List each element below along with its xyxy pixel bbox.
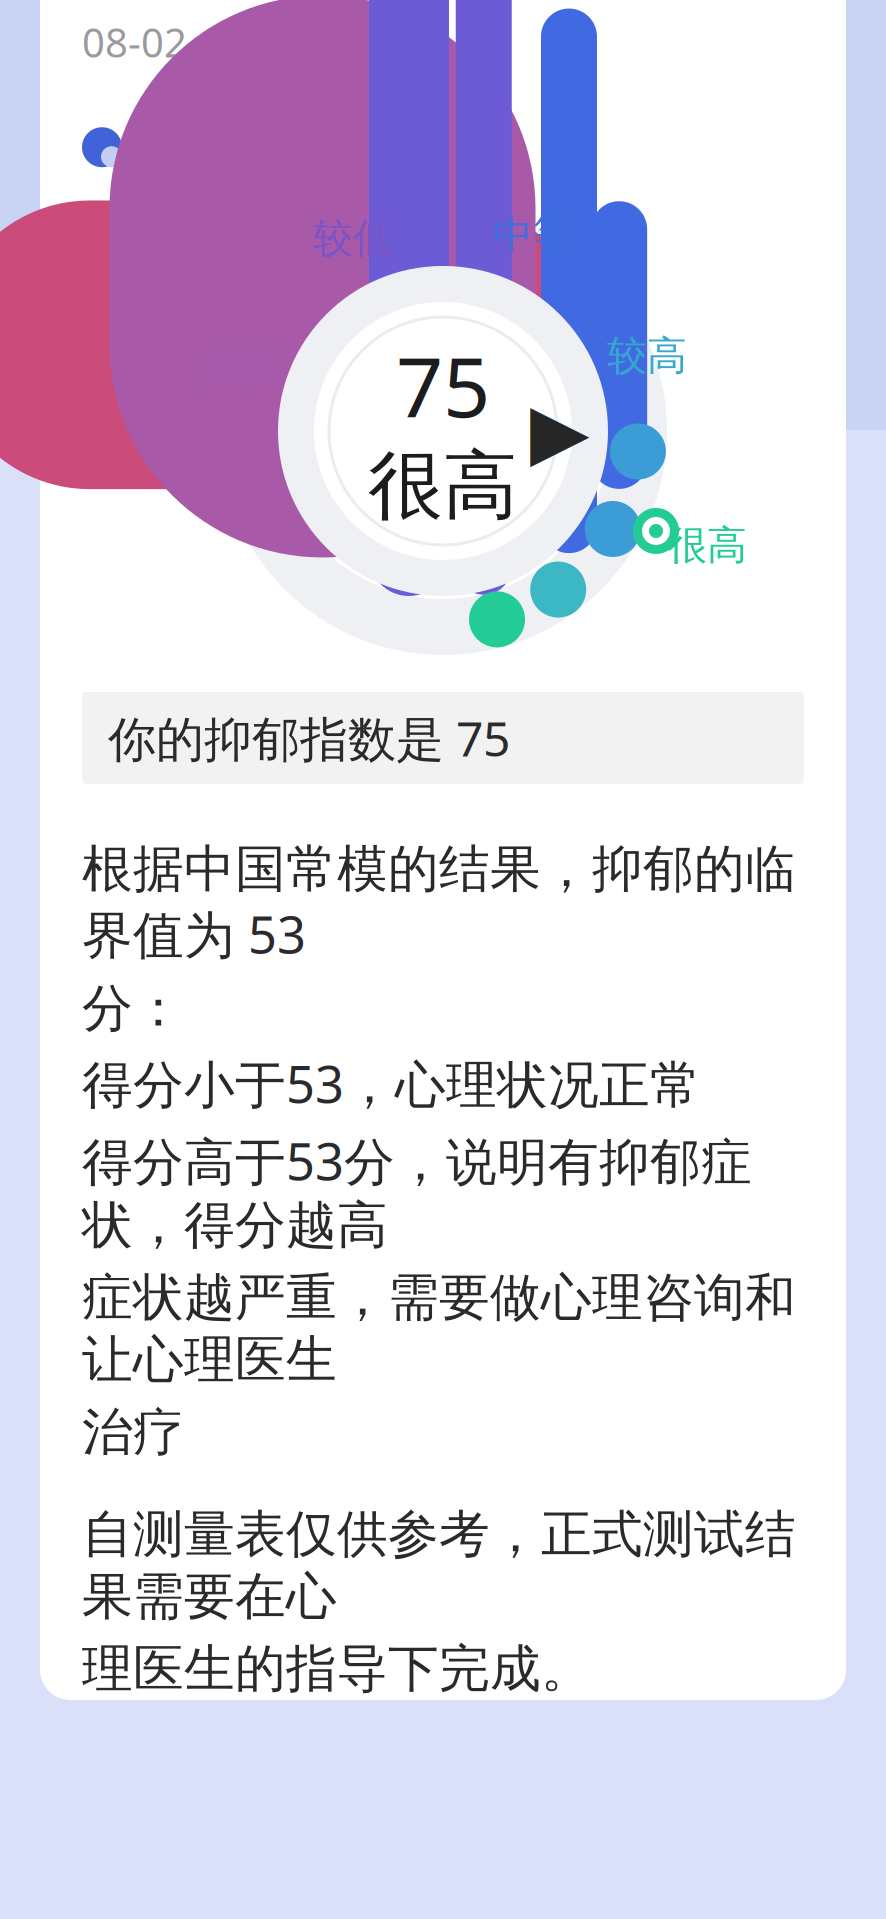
- staticText: 很高: [368, 440, 518, 532]
- staticText: 分：: [82, 977, 184, 1040]
- staticText: 得分小于53，心理状况正常: [82, 1050, 701, 1117]
- staticText: 较高: [607, 331, 687, 380]
- staticText: 得分高于53分，说明有抑郁症状，得分越高: [82, 1127, 752, 1256]
- staticText: 症状越严重，需要做心理咨询和让心理医生: [82, 1266, 796, 1391]
- staticText: 很高: [667, 521, 747, 570]
- staticText: 08-02 10:51: [82, 15, 300, 68]
- staticText: 根据中国常模的结果，抑郁的临界值为 53: [82, 838, 796, 967]
- staticText: ▶: [530, 387, 589, 475]
- staticText: 75: [396, 330, 490, 440]
- staticText: 中等: [493, 210, 573, 259]
- staticText: 自测量表仅供参考，正式测试结果需要在心: [82, 1503, 796, 1628]
- staticText: 偏低: [199, 341, 279, 390]
- staticText: 你的抑郁指数是 75: [108, 706, 510, 770]
- staticText: 理医生的指导下完成。: [82, 1638, 592, 1700]
- staticText: 较低: [313, 214, 393, 263]
- staticText: 治疗: [82, 1401, 184, 1463]
